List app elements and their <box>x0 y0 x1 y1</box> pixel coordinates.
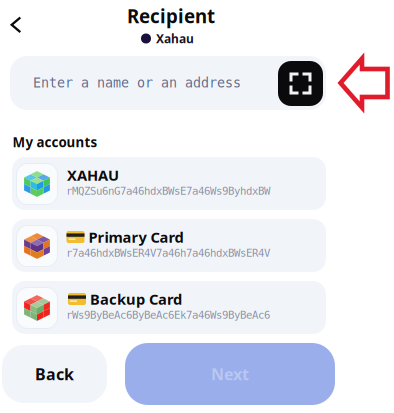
staticText: Primary Card <box>88 227 183 247</box>
staticText: Next <box>211 363 249 385</box>
staticText: r7a46hdxBWsER4V7a46h7a46hdxBWsER4V <box>66 247 270 259</box>
staticText: Back <box>35 363 74 385</box>
button[interactable]: XAHAU <box>12 157 326 210</box>
staticText: rMQZSu6nG7a46hdxBWsE7a46Ws9ByhdxBW <box>66 185 270 197</box>
staticText: Enter a name or an address <box>33 75 241 90</box>
staticText: XAHAU <box>67 165 119 185</box>
staticText: Recipient <box>127 4 215 28</box>
button[interactable]: Back <box>2 345 107 403</box>
staticText: My accounts <box>12 133 97 151</box>
button[interactable]: Next <box>125 343 335 405</box>
button[interactable]: Back <box>0 8 33 42</box>
button[interactable]: Backup Card <box>12 281 326 334</box>
staticText: Backup Card <box>90 289 182 309</box>
staticText: rWs9ByBeAc6ByBeAc6Ek7a46Ws9ByBeAc6 <box>66 309 270 321</box>
button[interactable]: Scan QR code <box>278 61 323 106</box>
staticText: Xahau <box>156 30 194 46</box>
button[interactable]: Primary Card <box>12 219 326 272</box>
